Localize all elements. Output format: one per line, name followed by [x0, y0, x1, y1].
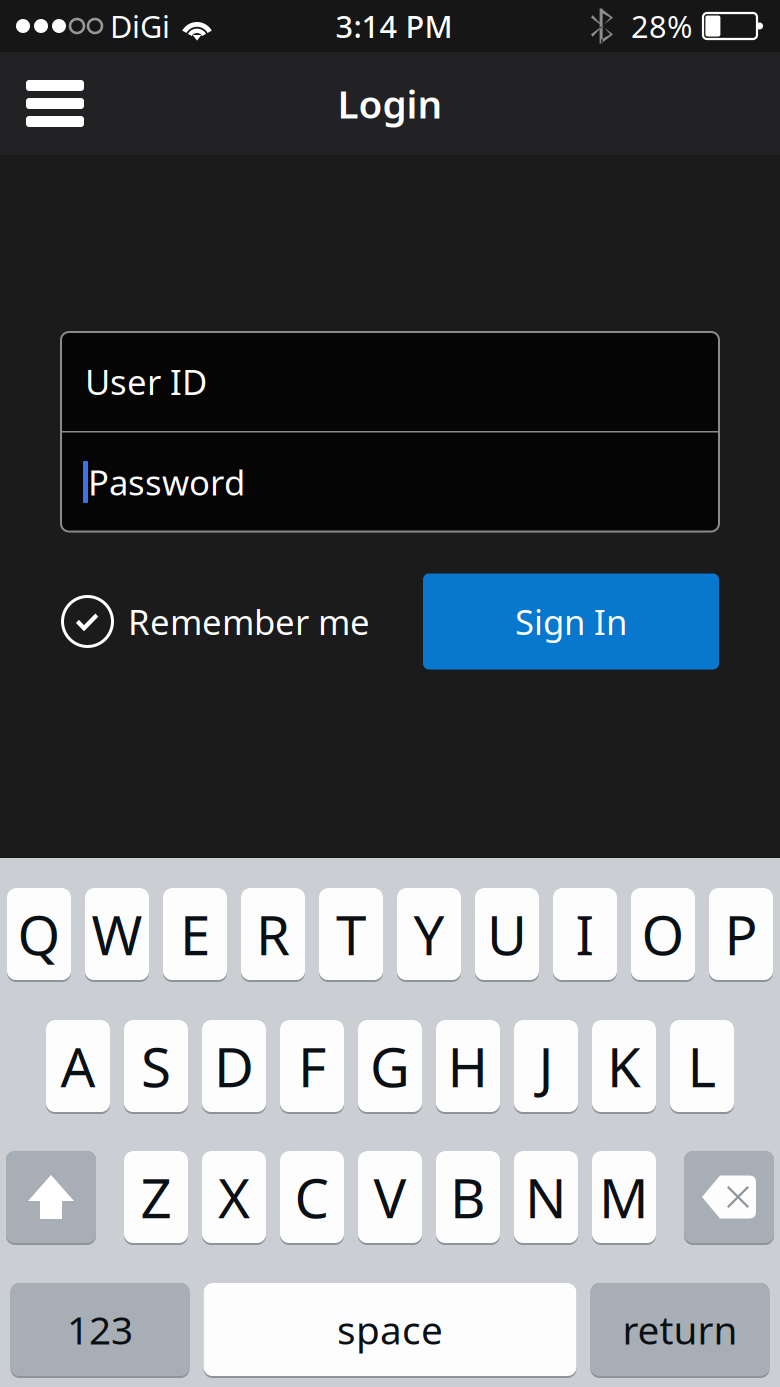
button[interactable]: Q: [7, 888, 71, 980]
staticText: 123: [67, 1304, 133, 1355]
button[interactable]: C: [280, 1151, 344, 1243]
staticText: G: [370, 1030, 410, 1102]
staticText: DiGi: [110, 6, 170, 46]
staticText: A: [60, 1030, 95, 1102]
staticText: K: [607, 1030, 641, 1102]
button[interactable]: A: [46, 1020, 110, 1112]
staticText: User ID: [85, 358, 207, 404]
staticText: return: [622, 1304, 737, 1355]
staticText: Y: [413, 898, 444, 970]
staticText: U: [487, 898, 527, 970]
staticText: F: [298, 1030, 326, 1102]
staticText: M: [599, 1161, 649, 1233]
button[interactable]: S: [124, 1020, 188, 1112]
button[interactable]: X: [202, 1151, 266, 1243]
staticText: T: [336, 898, 366, 970]
staticText: L: [687, 1030, 716, 1102]
button[interactable]: D: [202, 1020, 266, 1112]
staticText: I: [575, 898, 594, 970]
staticText: V: [373, 1161, 406, 1233]
staticText: E: [180, 898, 210, 970]
staticText: P: [724, 898, 757, 970]
staticText: B: [450, 1161, 486, 1233]
staticText: S: [141, 1030, 171, 1102]
button[interactable]: G: [358, 1020, 422, 1112]
staticText: N: [525, 1161, 567, 1233]
staticText: space: [337, 1304, 443, 1355]
staticText: D: [214, 1030, 254, 1102]
staticText: Login: [337, 78, 442, 129]
staticText: Password: [88, 459, 245, 505]
button[interactable]: N: [514, 1151, 578, 1243]
button[interactable]: Sign In: [423, 573, 719, 669]
button[interactable]: T: [319, 888, 383, 980]
button[interactable]: V: [358, 1151, 422, 1243]
staticText: Z: [140, 1161, 171, 1233]
button[interactable]: B: [436, 1151, 500, 1243]
button[interactable]: L: [670, 1020, 734, 1112]
staticText: 3:14 PM: [335, 6, 452, 46]
staticText: J: [538, 1030, 553, 1102]
button[interactable]: U: [475, 888, 539, 980]
button[interactable]: space: [203, 1283, 576, 1376]
button[interactable]: R: [241, 888, 305, 980]
button[interactable]: E: [163, 888, 227, 980]
button[interactable]: Shift: [6, 1151, 96, 1243]
button[interactable]: J: [514, 1020, 578, 1112]
button[interactable]: Menu: [0, 60, 110, 147]
button[interactable]: H: [436, 1020, 500, 1112]
button[interactable]: K: [592, 1020, 656, 1112]
staticText: Remember me: [128, 598, 370, 644]
staticText: W: [91, 898, 142, 970]
staticText: C: [294, 1161, 329, 1233]
staticText: X: [218, 1161, 250, 1233]
button[interactable]: Delete: [684, 1151, 774, 1243]
button[interactable]: O: [631, 888, 695, 980]
button[interactable]: 123: [10, 1283, 189, 1376]
button[interactable]: P: [709, 888, 773, 980]
button[interactable]: Z: [124, 1151, 188, 1243]
button[interactable]: M: [592, 1151, 656, 1243]
staticText: 28%: [631, 6, 692, 46]
button[interactable]: Remember me: [61, 573, 381, 669]
button[interactable]: W: [85, 888, 149, 980]
staticText: Sign In: [515, 598, 627, 644]
staticText: R: [256, 898, 290, 970]
button[interactable]: F: [280, 1020, 344, 1112]
button[interactable]: Y: [397, 888, 461, 980]
staticText: Q: [17, 898, 60, 970]
staticText: H: [447, 1030, 488, 1102]
button[interactable]: return: [590, 1283, 769, 1376]
staticText: O: [641, 898, 684, 970]
button[interactable]: I: [553, 888, 617, 980]
